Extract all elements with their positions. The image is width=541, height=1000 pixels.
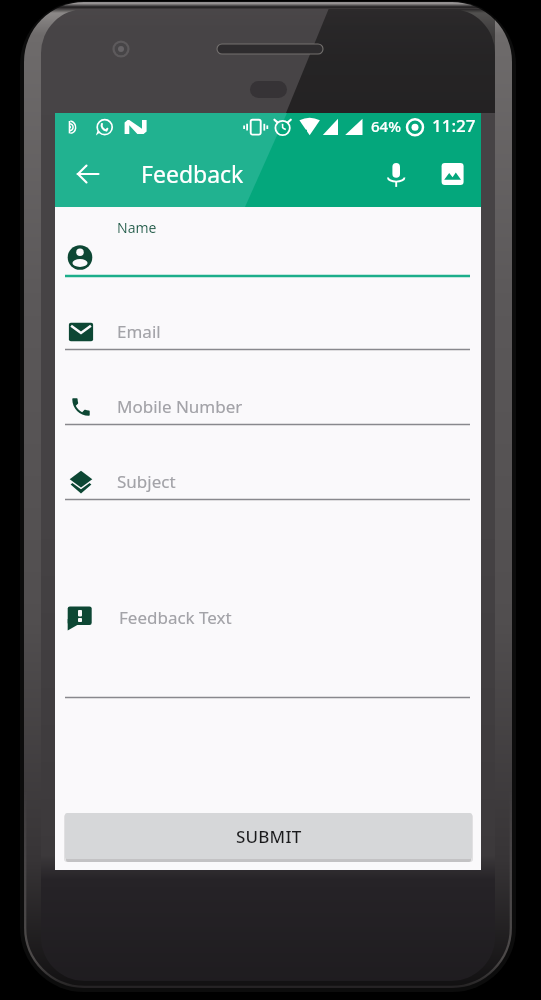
staticText: Email — [117, 320, 161, 343]
staticText: 64% — [371, 116, 401, 136]
staticText: Feedback — [141, 158, 244, 189]
staticText: SUBMIT — [236, 825, 302, 848]
staticText: Subject — [117, 470, 176, 493]
button[interactable]: Navigate back — [64, 150, 112, 198]
staticText: Mobile Number — [117, 395, 243, 418]
staticText: Feedback Text — [119, 606, 232, 629]
staticText: 11:27 — [432, 114, 476, 137]
staticText: Name — [117, 218, 157, 237]
button[interactable]: SUBMIT — [65, 813, 472, 859]
button[interactable]: Voice input — [372, 150, 420, 198]
button[interactable]: Attach image — [429, 150, 477, 198]
